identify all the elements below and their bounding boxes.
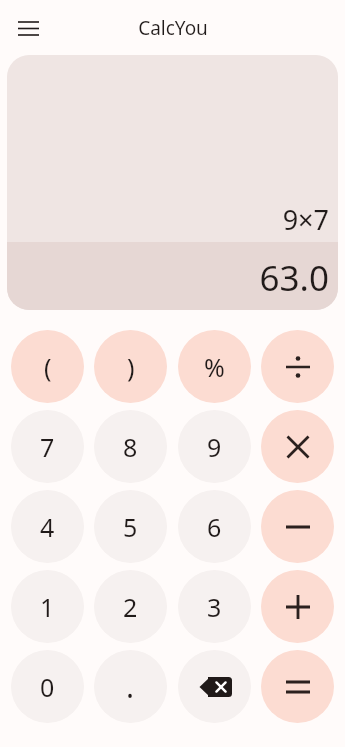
- staticText: .: [126, 666, 135, 707]
- button[interactable]: 9×7: [7, 55, 338, 310]
- button[interactable]: 5: [94, 490, 167, 563]
- button[interactable]: 1: [11, 570, 84, 643]
- staticText: 6: [207, 510, 222, 544]
- staticText: CalcYou: [138, 15, 208, 41]
- button[interactable]: 2: [94, 570, 167, 643]
- button[interactable]: Menu: [10, 10, 46, 46]
- staticText: 7: [40, 430, 55, 464]
- button[interactable]: 7: [11, 410, 84, 483]
- button[interactable]: Add: [261, 570, 334, 643]
- staticText: 9×7: [282, 201, 329, 238]
- staticText: 9: [207, 430, 222, 464]
- staticText: 2: [123, 590, 138, 624]
- button[interactable]: (: [11, 330, 84, 403]
- button[interactable]: 3: [178, 570, 251, 643]
- staticText: 8: [123, 430, 138, 464]
- staticText: 1: [40, 590, 55, 624]
- staticText: 4: [40, 510, 55, 544]
- button[interactable]: Equals: [261, 650, 334, 723]
- button[interactable]: %: [178, 330, 251, 403]
- staticText: 5: [123, 510, 138, 544]
- staticText: ): [127, 350, 135, 384]
- button[interactable]: Multiply: [261, 410, 334, 483]
- staticText: (: [44, 350, 52, 384]
- button[interactable]: 8: [94, 410, 167, 483]
- button[interactable]: .: [94, 650, 167, 723]
- button[interactable]: 6: [178, 490, 251, 563]
- button[interactable]: Backspace: [178, 650, 251, 723]
- staticText: %: [204, 350, 225, 384]
- button[interactable]: 0: [11, 650, 84, 723]
- staticText: 0: [40, 670, 55, 704]
- staticText: 3: [207, 590, 222, 624]
- button[interactable]: 9: [178, 410, 251, 483]
- button[interactable]: ): [94, 330, 167, 403]
- button[interactable]: Divide: [261, 330, 334, 403]
- button[interactable]: Subtract: [261, 490, 334, 563]
- button[interactable]: 4: [11, 490, 84, 563]
- staticText: 63.0: [259, 254, 329, 302]
